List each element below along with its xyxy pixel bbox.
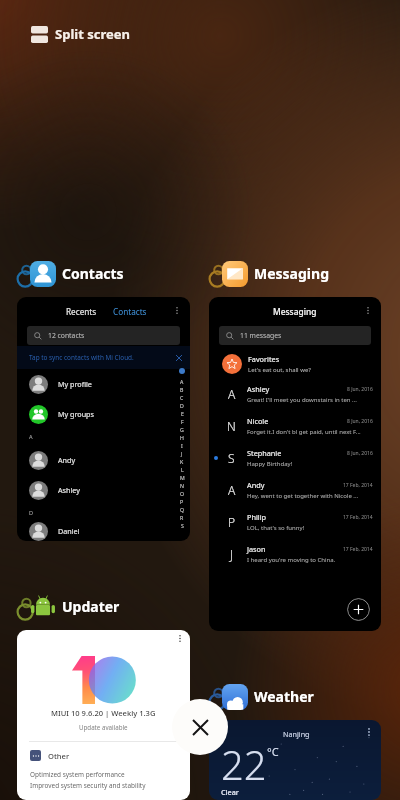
staticText: S bbox=[228, 450, 235, 466]
button[interactable]: A bbox=[209, 474, 381, 506]
staticText: Jason bbox=[247, 544, 343, 554]
staticText: J bbox=[181, 450, 183, 457]
staticText: 17 Feb, 2014 bbox=[343, 546, 373, 553]
staticText: 8 Jun, 2016 bbox=[347, 418, 373, 425]
staticText: R bbox=[180, 514, 184, 521]
staticText: I bbox=[181, 442, 183, 449]
button[interactable]: Contacts bbox=[18, 258, 124, 289]
staticText: N bbox=[180, 482, 184, 489]
button[interactable]: MIUI 10 9.6.20 | Weekly 1.3G bbox=[17, 630, 190, 800]
button[interactable]: Clear all bbox=[172, 699, 228, 755]
staticText: My profile bbox=[58, 379, 92, 389]
button[interactable]: Tap to sync contacts with Mi Cloud. bbox=[17, 346, 190, 369]
staticText: P bbox=[228, 514, 236, 530]
button[interactable]: J bbox=[209, 538, 381, 570]
staticText: Ashley bbox=[247, 384, 347, 394]
button[interactable]: Daniel bbox=[17, 521, 190, 541]
staticText: °C bbox=[267, 744, 279, 759]
staticText: M bbox=[180, 474, 185, 481]
button[interactable]: N bbox=[209, 410, 381, 442]
staticText: E bbox=[181, 410, 184, 417]
staticText: G bbox=[180, 426, 184, 433]
staticText: Andy bbox=[247, 480, 343, 490]
staticText: Ashley bbox=[58, 485, 80, 495]
staticText: Updater bbox=[62, 597, 120, 616]
staticText: Update available bbox=[79, 723, 128, 731]
button[interactable]: New message bbox=[347, 598, 370, 621]
staticText: Philip bbox=[247, 512, 343, 522]
button[interactable]: Favorites bbox=[209, 349, 381, 378]
staticText: Hey, went to get together with Nicole ..… bbox=[247, 492, 359, 500]
staticText: Weather bbox=[254, 687, 314, 706]
staticText: MIUI 10 9.6.20 | Weekly 1.3G bbox=[51, 708, 156, 718]
staticText: LOL, that's so funny! bbox=[247, 524, 305, 532]
staticText: Clear bbox=[221, 787, 239, 797]
staticText: A bbox=[228, 386, 236, 402]
staticText: N bbox=[227, 418, 236, 434]
staticText: Contacts bbox=[62, 264, 124, 283]
button[interactable]: Updater bbox=[18, 591, 120, 622]
staticText: Recents bbox=[66, 306, 97, 317]
staticText: D bbox=[29, 509, 34, 517]
button[interactable]: Andy bbox=[17, 445, 190, 475]
button[interactable]: My profile bbox=[17, 369, 190, 399]
staticText: O bbox=[180, 490, 185, 497]
staticText: C bbox=[180, 394, 184, 401]
staticText: Optimized system performance bbox=[30, 770, 125, 779]
button[interactable]: A bbox=[209, 378, 381, 410]
staticText: 22 bbox=[221, 737, 267, 791]
button[interactable]: Split screen bbox=[29, 23, 132, 45]
staticText: K bbox=[180, 458, 184, 465]
staticText: L bbox=[181, 466, 184, 473]
staticText: 12 contacts bbox=[48, 331, 85, 340]
button[interactable]: Nanjing bbox=[209, 720, 381, 800]
button[interactable]: S bbox=[209, 442, 381, 474]
button[interactable]: Messaging bbox=[209, 297, 381, 631]
button[interactable]: Recents bbox=[17, 297, 190, 541]
staticText: 8 Jun, 2016 bbox=[347, 450, 373, 457]
staticText: Contacts bbox=[113, 306, 147, 317]
button[interactable]: Ashley bbox=[17, 475, 190, 505]
staticText: Tap to sync contacts with Mi Cloud. bbox=[29, 353, 134, 362]
staticText: Daniel bbox=[58, 526, 80, 536]
staticText: 17 Feb, 2014 bbox=[343, 514, 373, 521]
staticText: Messaging bbox=[254, 264, 329, 283]
staticText: P bbox=[180, 498, 184, 505]
staticText: Let's eat out, shall we? bbox=[248, 366, 311, 374]
staticText: 8 Jun, 2016 bbox=[347, 386, 373, 393]
button[interactable]: My groups bbox=[17, 399, 190, 429]
staticText: Forget it.I don't bl get paid, until nex… bbox=[247, 428, 361, 436]
staticText: Messaging bbox=[273, 306, 317, 317]
staticText: Nicole bbox=[247, 416, 347, 426]
button[interactable]: Weather bbox=[210, 681, 314, 712]
button[interactable]: 12 contacts bbox=[27, 326, 180, 345]
staticText: S bbox=[181, 522, 184, 529]
staticText: Favorites bbox=[248, 354, 280, 364]
staticText: 17 Feb, 2014 bbox=[343, 482, 373, 489]
staticText: Great! I'll meet you downstairs in ten .… bbox=[247, 396, 357, 404]
staticText: Split screen bbox=[55, 25, 130, 43]
button[interactable]: 11 messages bbox=[219, 326, 371, 345]
button[interactable]: P bbox=[209, 506, 381, 538]
staticText: J bbox=[230, 546, 234, 562]
staticText: A bbox=[228, 482, 236, 498]
staticText: Andy bbox=[58, 455, 76, 465]
staticText: Other bbox=[48, 751, 70, 761]
staticText: D bbox=[180, 402, 184, 409]
staticText: 11 messages bbox=[240, 331, 282, 340]
staticText: Q bbox=[180, 506, 185, 513]
staticText: A bbox=[180, 378, 184, 385]
staticText: Nanjing bbox=[283, 729, 310, 739]
staticText: A bbox=[29, 433, 33, 441]
staticText: F bbox=[181, 418, 184, 425]
staticText: I heard you're moving to China. bbox=[247, 556, 336, 564]
staticText: Happy Birthday! bbox=[247, 460, 293, 468]
button[interactable]: Messaging bbox=[210, 258, 329, 289]
staticText: Improved system security and stability bbox=[30, 781, 146, 790]
staticText: B bbox=[180, 386, 184, 393]
staticText: H bbox=[180, 434, 184, 441]
staticText: My groups bbox=[58, 409, 94, 419]
staticText: Stephanie bbox=[247, 448, 347, 458]
